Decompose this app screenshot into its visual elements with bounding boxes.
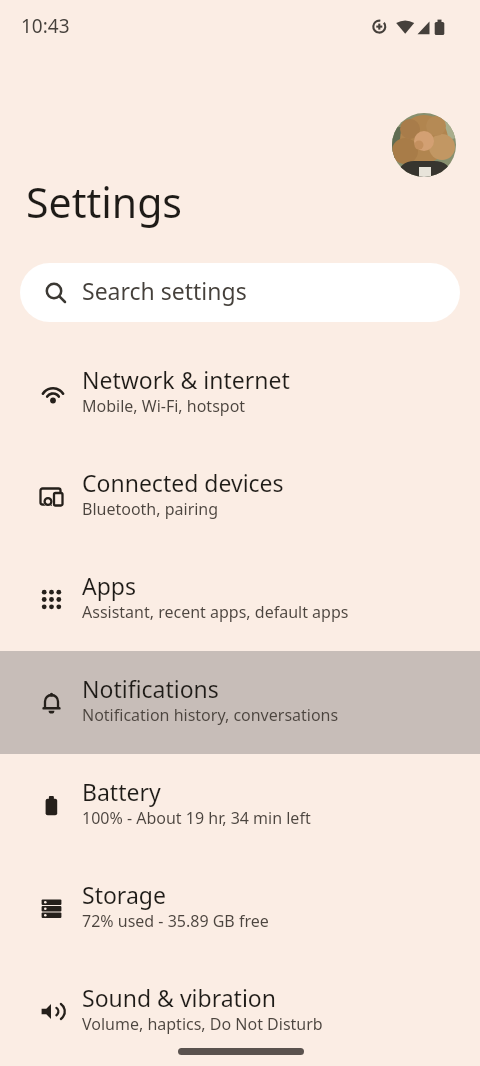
staticText: Network & internet xyxy=(82,364,290,395)
button[interactable] xyxy=(392,113,456,177)
staticText: Assistant, recent apps, default apps xyxy=(82,601,349,623)
staticText: Storage xyxy=(82,879,166,910)
staticText: Notifications xyxy=(82,673,219,704)
staticText: Battery xyxy=(82,776,161,807)
staticText: Notification history, conversations xyxy=(82,704,339,726)
staticText: Volume, haptics, Do Not Disturb xyxy=(82,1013,323,1035)
staticText: Sound & vibration xyxy=(82,982,276,1013)
staticText: 10:43 xyxy=(21,13,70,39)
staticText: Settings xyxy=(26,174,183,230)
staticText: Connected devices xyxy=(82,467,284,498)
staticText: Search settings xyxy=(82,275,247,306)
button[interactable]: Apps xyxy=(0,548,480,651)
staticText: Mobile, Wi-Fi, hotspot xyxy=(82,395,246,417)
staticText: 100% - About 19 hr, 34 min left xyxy=(82,807,311,829)
staticText: 72% used - 35.89 GB free xyxy=(82,910,269,932)
staticText: Bluetooth, pairing xyxy=(82,498,219,520)
button[interactable]: Notifications xyxy=(0,651,480,754)
button[interactable]: Storage xyxy=(0,857,480,960)
button[interactable]: Sound & vibration xyxy=(0,960,480,1063)
button[interactable]: Battery xyxy=(0,754,480,857)
button[interactable]: Network & internet xyxy=(0,342,480,445)
staticText: Apps xyxy=(82,570,137,601)
button[interactable]: Connected devices xyxy=(0,445,480,548)
button[interactable]: Search settings xyxy=(20,263,460,322)
